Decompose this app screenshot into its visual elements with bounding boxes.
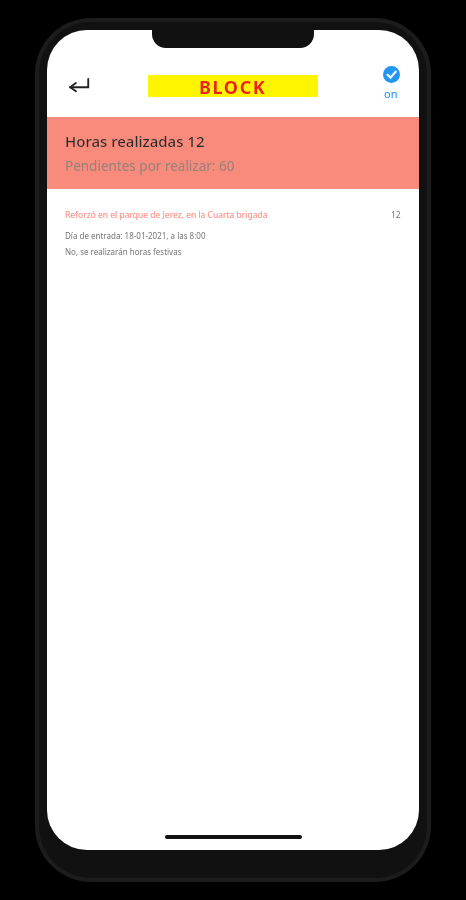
button[interactable]: BLOCK	[148, 75, 318, 97]
staticText: 12	[391, 209, 401, 221]
staticText: Horas realizadas 12	[65, 131, 205, 151]
staticText: on	[384, 86, 398, 101]
staticText: Pendientes por realizar: 60	[65, 157, 235, 175]
button[interactable]: Back	[55, 61, 103, 109]
button[interactable]: Horas realizadas 12	[47, 117, 419, 189]
staticText: BLOCK	[199, 75, 267, 97]
button[interactable]: Reforzó en el parque de Jerez, en la Cua…	[47, 207, 419, 259]
staticText: Reforzó en el parque de Jerez, en la Cua…	[65, 209, 268, 221]
staticText: Día de entrada: 18-01-2021, a las 8:00	[65, 230, 206, 241]
button[interactable]: Toggle on	[369, 66, 413, 101]
staticText: No, se realizarán horas festivas	[65, 246, 182, 257]
